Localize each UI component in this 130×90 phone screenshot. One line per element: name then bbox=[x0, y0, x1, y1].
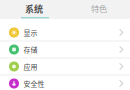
staticText: 系统 bbox=[25, 2, 43, 15]
staticText: 特色 bbox=[91, 2, 107, 14]
staticText: 显示 bbox=[23, 27, 37, 37]
staticText: 存储 bbox=[23, 44, 37, 54]
button[interactable]: 安全性 bbox=[0, 75, 130, 90]
button[interactable]: 应用 bbox=[0, 58, 130, 75]
staticText: 安全性 bbox=[23, 78, 44, 88]
button[interactable]: 存储 bbox=[0, 41, 130, 58]
button[interactable]: 特色 bbox=[68, 0, 130, 17]
button[interactable]: 显示 bbox=[0, 24, 130, 41]
staticText: 应用 bbox=[23, 61, 37, 71]
button[interactable]: 系统 bbox=[0, 0, 68, 17]
